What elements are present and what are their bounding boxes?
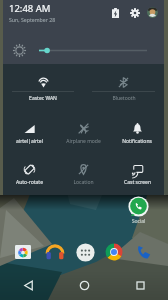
button[interactable]: User account <box>147 7 158 18</box>
button[interactable]: Play Music <box>46 243 64 261</box>
staticText: 12:48 AM <box>9 2 51 15</box>
staticText: Location <box>73 179 94 186</box>
button[interactable]: WhatsApp <box>128 196 149 217</box>
button[interactable]: Airplane mode <box>56 109 110 151</box>
button[interactable]: Auto-rotate <box>3 151 56 193</box>
button[interactable]: Home <box>56 270 112 300</box>
button[interactable]: Chrome <box>105 243 123 261</box>
staticText: Eastec WAN <box>29 95 57 102</box>
button[interactable]: Photos <box>15 244 31 260</box>
button[interactable]: airtel|airtel <box>3 109 56 151</box>
button[interactable]: Eastec WAN <box>3 64 83 109</box>
staticText: Cast screen <box>124 179 151 186</box>
staticText: Auto-rotate <box>16 179 43 186</box>
button[interactable]: Bluetooth <box>83 64 164 109</box>
staticText: Social <box>126 218 151 225</box>
button[interactable]: Battery charging <box>109 6 122 19</box>
button[interactable]: Notifications <box>110 109 164 151</box>
button[interactable]: Location <box>56 151 110 193</box>
staticText: Bluetooth <box>112 95 136 102</box>
button[interactable]: Phone <box>134 243 152 261</box>
button[interactable]: Recent apps <box>112 270 168 300</box>
button[interactable]: All apps <box>76 243 95 262</box>
staticText: Airplane mode <box>66 138 101 145</box>
staticText: airtel|airtel <box>16 138 43 145</box>
staticText: Sun, September 28 <box>9 16 56 23</box>
button[interactable]: Settings <box>128 6 141 19</box>
button[interactable]: Cast screen <box>110 151 164 193</box>
button[interactable]: Back <box>0 270 56 300</box>
staticText: Notifications <box>122 138 152 145</box>
